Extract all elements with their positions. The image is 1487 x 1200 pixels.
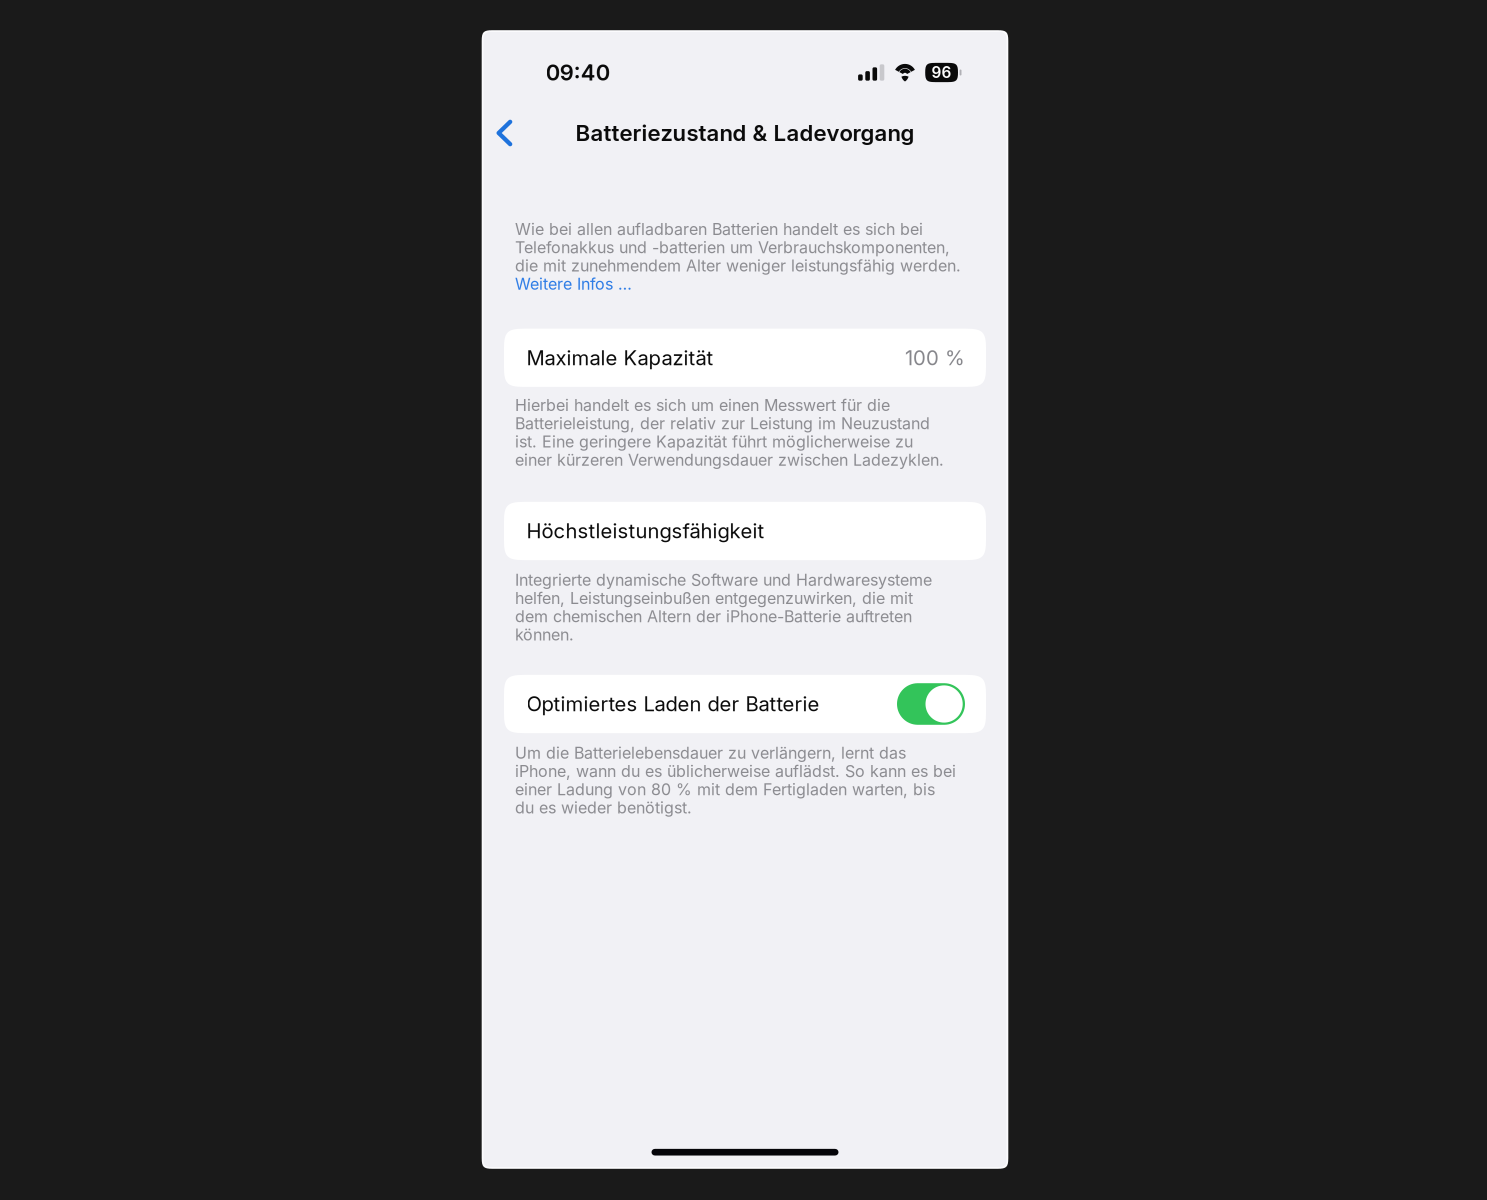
staticText: können. bbox=[515, 625, 574, 644]
staticText: Integrierte dynamische Software und Hard… bbox=[515, 570, 932, 590]
staticText: einer Ladung von 80 % mit dem Fertiglade… bbox=[515, 780, 935, 799]
staticText: Optimiertes Laden der Batterie bbox=[526, 692, 819, 716]
button[interactable]: Weitere Infos … bbox=[515, 275, 632, 293]
staticText: 100 % bbox=[905, 345, 965, 370]
staticText: Batterieleistung, der relativ zur Leistu… bbox=[515, 414, 930, 433]
button[interactable]: Optimiertes Laden der Batterie bbox=[897, 683, 965, 725]
staticText: einer kürzeren Verwendungsdauer zwischen… bbox=[515, 450, 944, 470]
staticText: Telefonakkus und -batterien um Verbrauch… bbox=[515, 238, 950, 257]
staticText: Wie bei allen aufladbaren Batterien hand… bbox=[515, 219, 923, 239]
staticText: helfen, Leistungseinbußen entgegenzuwirk… bbox=[515, 588, 913, 608]
button[interactable]: Optimiertes Laden der Batterie bbox=[483, 675, 1006, 733]
button[interactable]: Höchstleistungsfähigkeit bbox=[483, 502, 1006, 560]
staticText: 09:40 bbox=[546, 59, 610, 86]
staticText: 96 bbox=[932, 63, 952, 82]
staticText: iPhone, wann du es üblicherweise aufläds… bbox=[515, 761, 956, 781]
staticText: ist. Eine geringere Kapazität führt mögl… bbox=[515, 432, 913, 451]
button[interactable]: Zurück bbox=[483, 111, 528, 155]
staticText: Höchstleistungsfähigkeit bbox=[526, 519, 764, 543]
staticText: Batteriezustand & Ladevorgang bbox=[575, 119, 914, 146]
staticText: du es wieder benötigst. bbox=[515, 798, 692, 817]
button[interactable]: Maximale Kapazität bbox=[483, 329, 1006, 387]
staticText: dem chemischen Altern der iPhone-Batteri… bbox=[515, 607, 912, 626]
staticText: Hierbei handelt es sich um einen Messwer… bbox=[515, 395, 890, 415]
staticText: die mit zunehmendem Alter weniger leistu… bbox=[515, 256, 961, 275]
staticText: Maximale Kapazität bbox=[526, 345, 713, 370]
staticText: Um die Batterielebensdauer zu verlängern… bbox=[515, 743, 906, 763]
staticText: Weitere Infos … bbox=[515, 274, 632, 294]
